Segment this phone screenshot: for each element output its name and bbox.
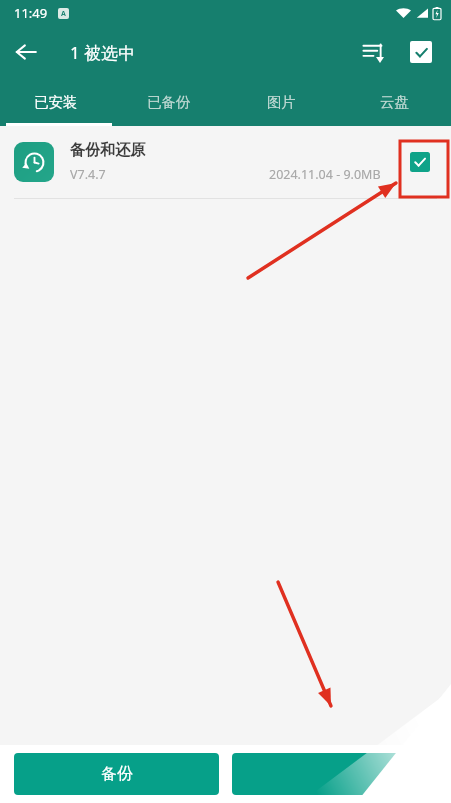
staticText: V7.4.7 xyxy=(70,166,106,183)
staticText: 已备份 xyxy=(147,93,191,111)
staticText: 图片 xyxy=(267,93,296,111)
button[interactable]: 已安装 xyxy=(0,78,112,126)
button[interactable]: 图片 xyxy=(225,78,338,126)
button[interactable]: Sort xyxy=(349,28,397,76)
staticText: 11:49 xyxy=(14,4,48,22)
staticText: 2024.11.04 - 9.0MB xyxy=(269,166,381,183)
staticText: 备份 xyxy=(101,764,133,784)
staticText: 1 被选中 xyxy=(70,41,136,64)
button[interactable]: 备份和还原 xyxy=(0,126,451,198)
staticText: 云盘 xyxy=(380,93,409,111)
staticText: 已安装 xyxy=(34,93,78,111)
staticText: A xyxy=(61,9,66,19)
button[interactable]: Selected xyxy=(403,145,437,179)
button[interactable] xyxy=(232,753,437,795)
button[interactable]: Select all xyxy=(397,28,445,76)
staticText: 备份和还原 xyxy=(70,141,145,160)
button[interactable]: 已备份 xyxy=(112,78,225,126)
button[interactable]: Back xyxy=(0,26,52,78)
button[interactable]: 云盘 xyxy=(338,78,451,126)
button[interactable]: 备份 xyxy=(14,753,219,795)
